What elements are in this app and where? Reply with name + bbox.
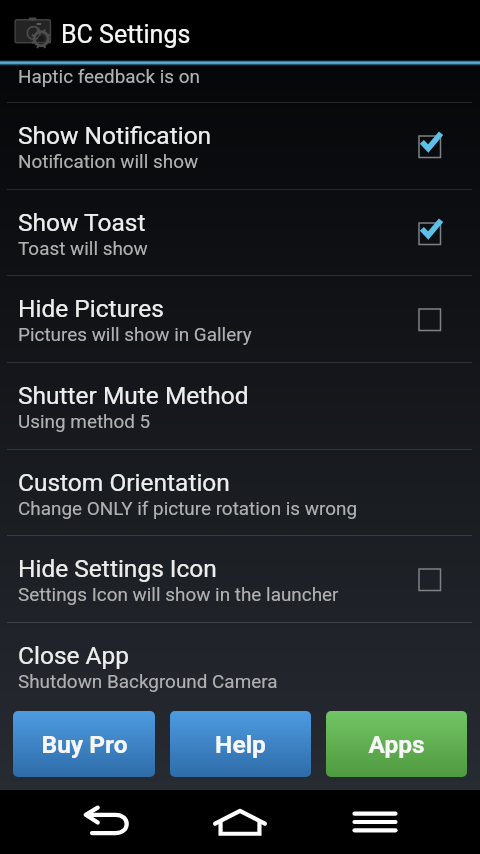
staticText: Custom Orientation [18,468,230,497]
staticText: Toast will show [18,237,148,259]
button[interactable]: Back [38,790,172,854]
button[interactable]: Menu [308,790,442,854]
button[interactable]: Close App [0,622,480,709]
staticText: Help [215,730,266,759]
staticText: Close App [18,641,130,670]
staticText: Show Notification [18,121,212,150]
button[interactable]: Hide Pictures [410,300,448,338]
button[interactable]: Show Notification [410,127,448,165]
staticText: Buy Pro [41,730,128,759]
staticText: Haptic feedback is on [18,65,201,87]
staticText: Using method 5 [18,410,151,432]
staticText: Hide Pictures [18,294,164,323]
button[interactable]: Apps [326,711,467,777]
button[interactable]: Buy Pro [13,711,155,777]
button[interactable]: Home [173,790,307,854]
button[interactable]: Show Toast [0,189,480,276]
button[interactable]: Hide Settings Icon [0,535,480,622]
staticText: Show Toast [18,208,146,237]
staticText: Change ONLY if picture rotation is wrong [18,497,358,519]
staticText: Shutdown Background Camera [18,670,278,692]
button[interactable]: BC Settings [0,0,480,60]
button[interactable]: Show Notification [0,102,480,189]
button[interactable]: Custom Orientation [0,449,480,536]
button[interactable]: Shutter Mute Method [0,362,480,449]
button[interactable]: Hide Pictures [0,275,480,362]
button[interactable]: Show Toast [410,214,448,252]
button[interactable]: Hide Settings Icon [410,560,448,598]
staticText: BC Settings [61,20,191,49]
staticText: Pictures will show in Gallery [18,323,252,345]
button[interactable]: Haptic feedback is on [0,60,480,102]
staticText: Apps [368,730,425,759]
staticText: Settings Icon will show in the launcher [18,583,339,605]
staticText: Shutter Mute Method [18,381,249,410]
staticText: Hide Settings Icon [18,554,217,583]
staticText: Notification will show [18,150,199,172]
button[interactable]: Help [170,711,311,777]
